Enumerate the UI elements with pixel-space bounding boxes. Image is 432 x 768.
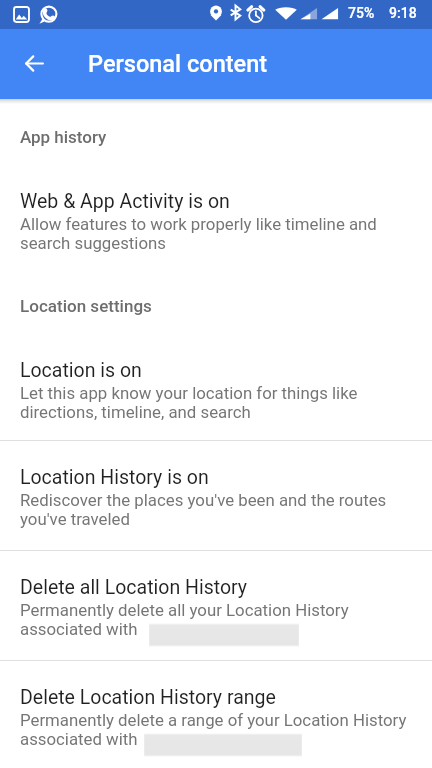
staticText: Delete all Location History xyxy=(20,576,248,599)
staticText: Delete Location History range xyxy=(20,686,276,709)
staticText: Location History is on xyxy=(20,466,209,489)
staticText: 75% xyxy=(348,5,375,21)
button[interactable]: Location History is on xyxy=(0,441,432,550)
staticText: Allow features to work properly like tim… xyxy=(20,214,410,253)
button[interactable]: Web & App Activity is on xyxy=(0,147,432,271)
staticText: Web & App Activity is on xyxy=(20,190,230,213)
staticText: Permanently delete all your Location His… xyxy=(20,600,410,639)
staticText: Let this app know your location for thin… xyxy=(20,383,410,422)
staticText: App history xyxy=(20,127,107,147)
staticText: Location is on xyxy=(20,359,142,382)
staticText: Rediscover the places you've been and th… xyxy=(20,490,410,529)
staticText: 9:18 xyxy=(389,5,417,21)
staticText: Permanently delete a range of your Locat… xyxy=(20,710,410,747)
button[interactable]: Navigate up xyxy=(6,35,62,91)
button[interactable]: Delete Location History range xyxy=(0,661,432,768)
staticText: Location settings xyxy=(20,296,152,316)
button[interactable]: Location is on xyxy=(0,316,432,440)
staticText: Personal content xyxy=(88,50,268,78)
button[interactable]: Delete all Location History xyxy=(0,551,432,660)
